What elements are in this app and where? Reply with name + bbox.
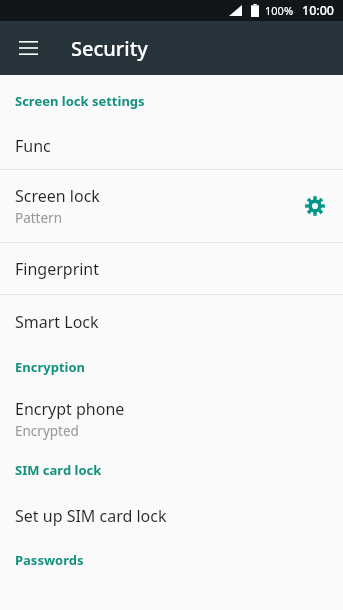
staticText: 10:00 xyxy=(302,2,335,19)
staticText: Pattern xyxy=(15,209,63,227)
button[interactable]: Encrypt phone xyxy=(0,390,343,448)
button[interactable]: Screen lock settings xyxy=(287,170,343,242)
staticText: Set up SIM card lock xyxy=(15,505,167,527)
staticText: SIM card lock xyxy=(15,461,102,479)
staticText: Fingerprint xyxy=(15,258,100,280)
button[interactable]: Smart Lock xyxy=(0,295,343,348)
staticText: Encrypt phone xyxy=(15,398,125,420)
button[interactable]: Set up SIM card lock xyxy=(0,493,343,539)
staticText: Func xyxy=(15,135,51,157)
staticText: Screen lock xyxy=(15,185,100,207)
staticText: Smart Lock xyxy=(15,311,99,333)
staticText: 100% xyxy=(265,3,294,18)
staticText: Screen lock settings xyxy=(15,92,145,110)
button[interactable]: Fingerprint xyxy=(0,243,343,294)
button[interactable]: Open navigation menu xyxy=(6,26,50,70)
staticText: Encryption xyxy=(15,358,85,376)
staticText: Encrypted xyxy=(15,422,79,440)
button[interactable]: Screen lock xyxy=(0,170,287,242)
staticText: Security xyxy=(71,35,148,62)
staticText: Passwords xyxy=(15,551,84,569)
button[interactable]: Func xyxy=(0,123,343,169)
